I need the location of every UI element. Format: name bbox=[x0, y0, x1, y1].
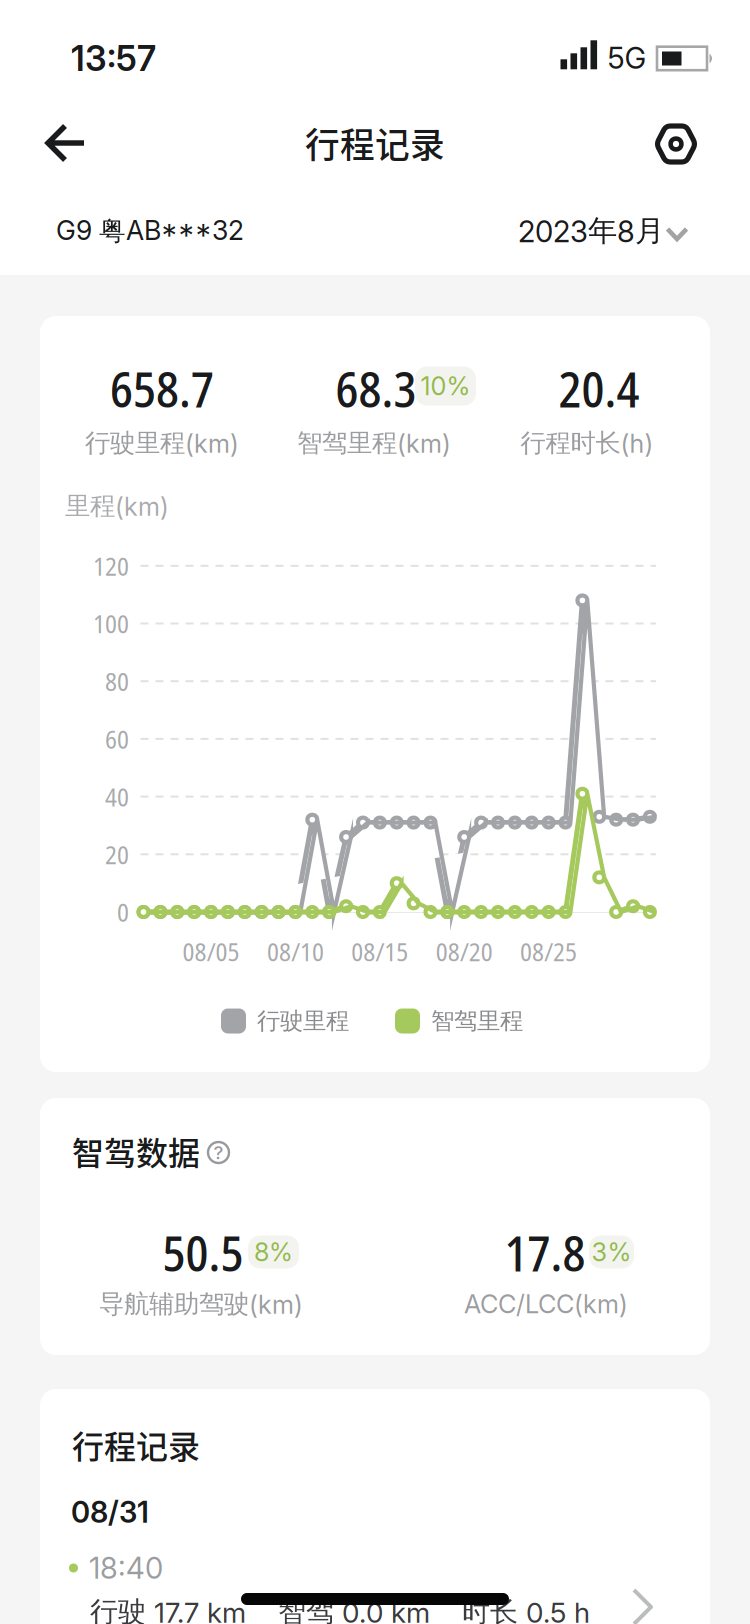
staticText: 13:57 bbox=[71, 37, 156, 79]
staticText: ? bbox=[213, 1141, 223, 1164]
staticText: 行驶 17.7 km 智驾 0.0 km 时长 0.5 h bbox=[90, 1594, 590, 1624]
staticText: 智驾数据 bbox=[72, 1128, 200, 1174]
staticText: 17.8 bbox=[504, 1220, 585, 1286]
button[interactable]: 2023年8月 bbox=[518, 212, 688, 249]
staticText: 5G bbox=[607, 40, 646, 76]
staticText: G9 粤AB***32 bbox=[56, 214, 244, 248]
staticText: 658.7 bbox=[110, 356, 214, 422]
staticText: 80 bbox=[105, 664, 129, 698]
staticText: 行驶里程 bbox=[257, 1006, 349, 1036]
staticText: ACC/LCC(km) bbox=[464, 1289, 628, 1319]
button[interactable]: About smart driving data bbox=[200, 1134, 236, 1170]
staticText: 0 bbox=[117, 895, 129, 929]
staticText: 100 bbox=[93, 606, 129, 641]
staticText: 68.3 bbox=[335, 356, 416, 422]
button[interactable]: Back bbox=[33, 111, 97, 175]
button[interactable]: Settings bbox=[644, 112, 708, 176]
staticText: 08/20 bbox=[436, 934, 493, 969]
staticText: 08/10 bbox=[267, 934, 324, 969]
staticText: 2023年8月 bbox=[518, 212, 664, 249]
staticText: 里程(km) bbox=[65, 490, 169, 522]
staticText: 导航辅助驾驶(km) bbox=[99, 1288, 303, 1320]
staticText: 8% bbox=[254, 1237, 293, 1267]
staticText: 18:40 bbox=[89, 1550, 163, 1586]
button[interactable]: 18:40 bbox=[40, 1530, 710, 1624]
staticText: 智驾里程(km) bbox=[297, 427, 451, 459]
staticText: 智驾里程 bbox=[431, 1006, 523, 1036]
staticText: 50.5 bbox=[162, 1220, 243, 1286]
staticText: 08/05 bbox=[182, 934, 239, 969]
staticText: 20.4 bbox=[558, 356, 639, 422]
staticText: 3% bbox=[591, 1237, 631, 1267]
staticText: 行程时长(h) bbox=[520, 427, 653, 459]
staticText: 08/31 bbox=[71, 1494, 149, 1530]
staticText: 行驶里程(km) bbox=[85, 427, 239, 459]
staticText: 40 bbox=[105, 779, 129, 814]
staticText: 120 bbox=[93, 548, 129, 583]
staticText: 10% bbox=[420, 371, 470, 401]
staticText: 20 bbox=[105, 837, 129, 871]
staticText: 60 bbox=[105, 722, 129, 756]
staticText: 08/15 bbox=[351, 934, 408, 969]
staticText: 行程记录 bbox=[305, 118, 445, 168]
staticText: 行程记录 bbox=[72, 1421, 200, 1468]
staticText: 08/25 bbox=[520, 934, 577, 969]
